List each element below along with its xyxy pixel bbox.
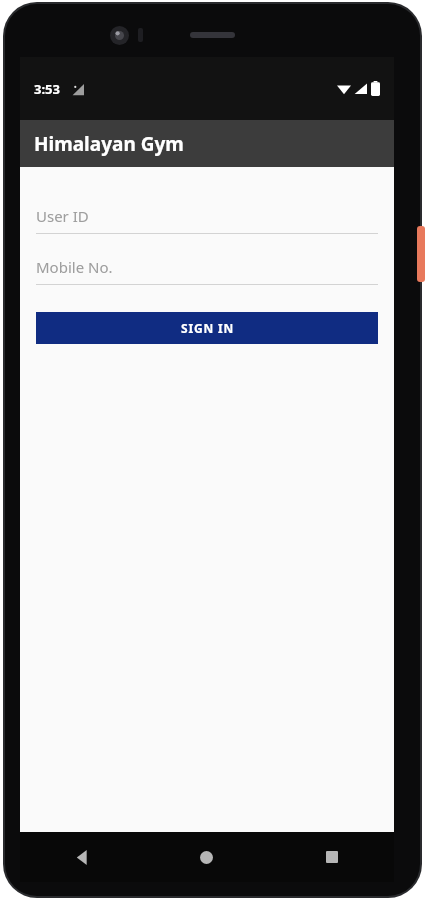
staticText: 3:53 [34,80,60,98]
button[interactable]: SIGN IN [36,312,378,344]
button[interactable]: Back [20,832,144,882]
button[interactable]: Recent apps [269,832,394,882]
button[interactable]: Mobile No. [36,254,378,285]
button[interactable]: User ID [36,203,378,234]
staticText: Mobile No. [36,257,113,277]
staticText: Himalayan Gym [34,131,184,157]
button[interactable]: Home [144,832,269,882]
other: Power button [417,226,425,282]
staticText: SIGN IN [181,320,234,336]
staticText: User ID [36,206,89,226]
